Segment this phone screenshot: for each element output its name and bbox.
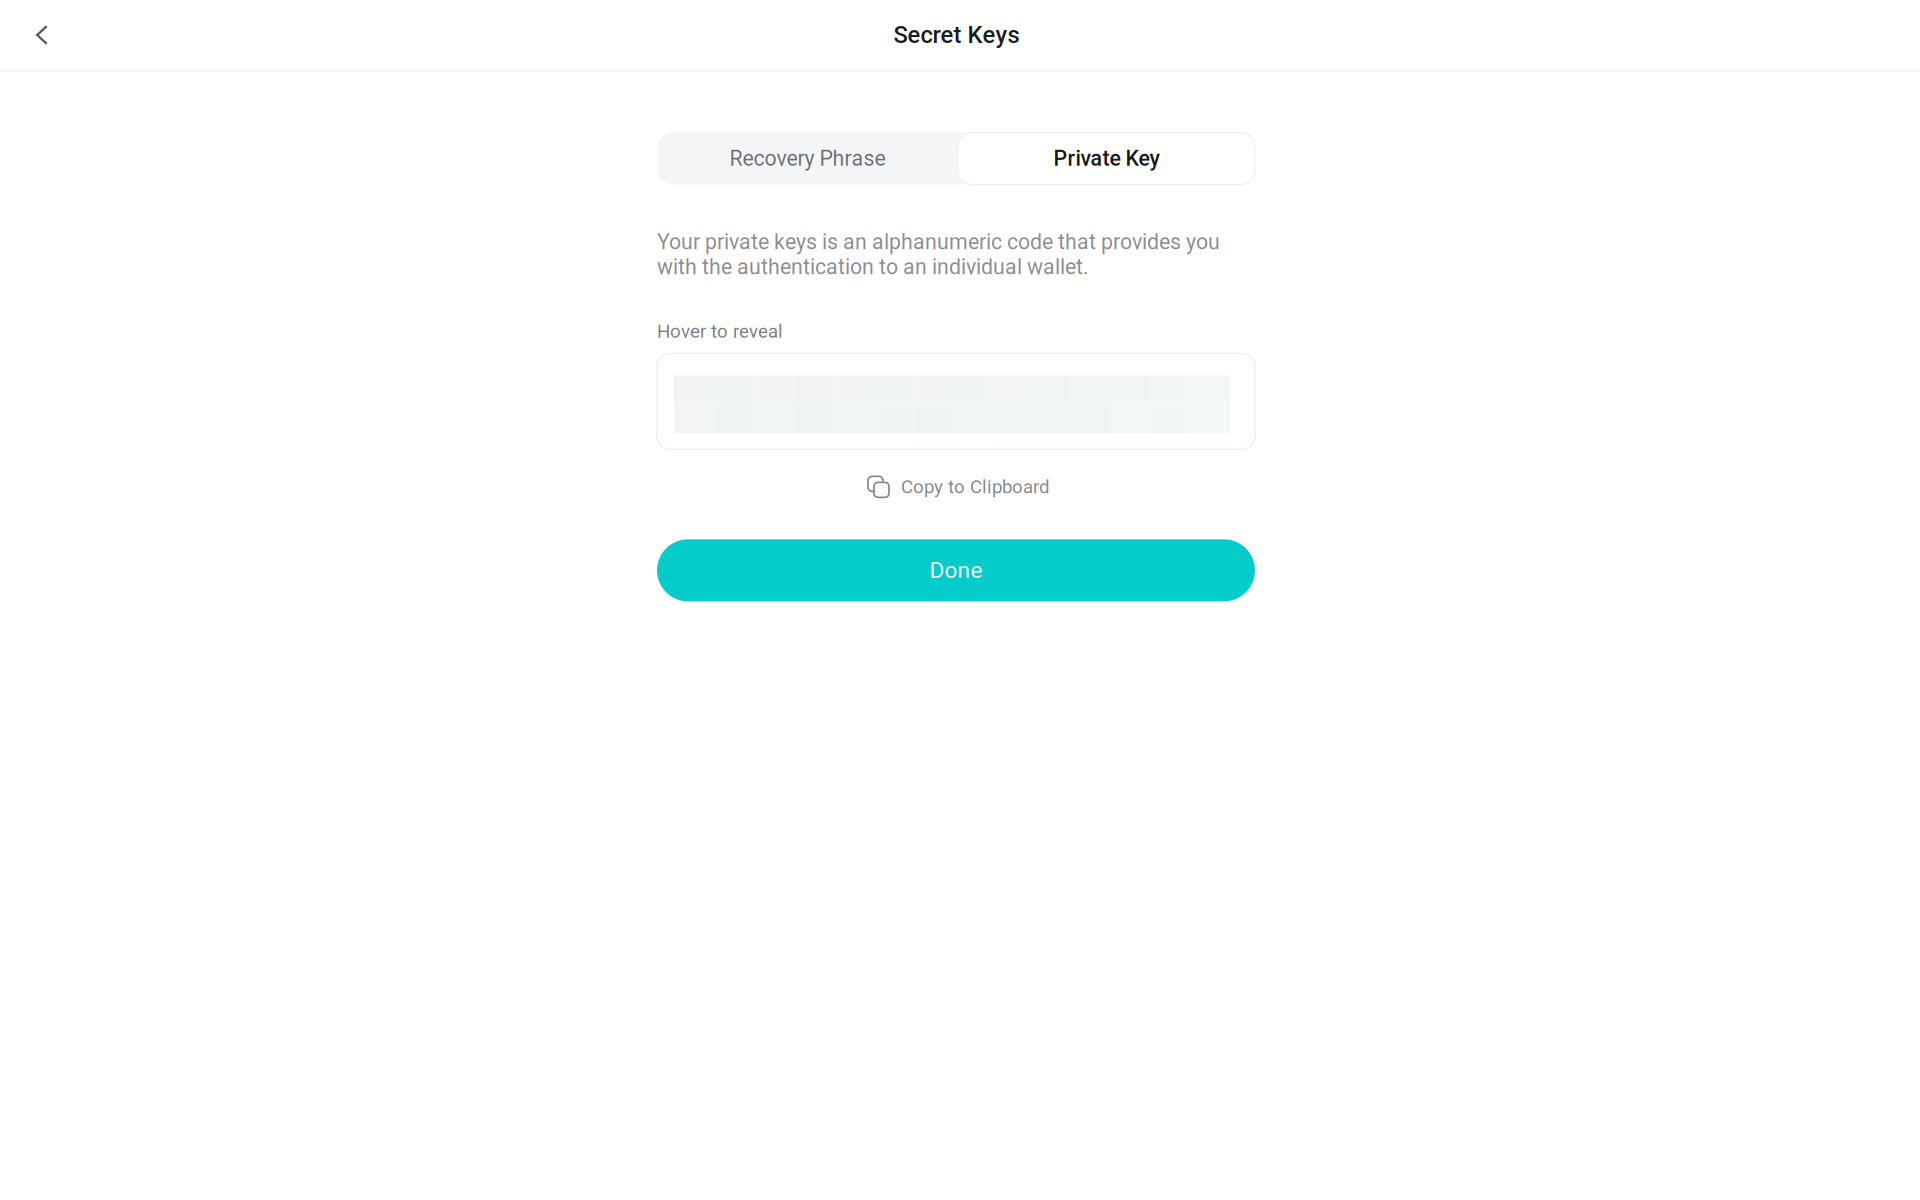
staticText: Your private keys is an alphanumeric cod… <box>657 229 1220 279</box>
button[interactable]: Recovery Phrase <box>657 132 958 184</box>
staticText: Recovery Phrase <box>729 146 885 171</box>
staticText: Done <box>929 557 982 584</box>
button[interactable]: Copy to Clipboard <box>657 476 1261 497</box>
button[interactable]: Private Key <box>958 132 1255 184</box>
staticText: Copy to Clipboard <box>901 476 1050 498</box>
button[interactable]: Done <box>657 539 1255 601</box>
staticText: Secret Keys <box>893 21 1019 49</box>
button[interactable]: Back <box>16 9 68 61</box>
staticText: Hover to reveal <box>657 320 783 342</box>
staticText: Private Key <box>1053 146 1159 171</box>
